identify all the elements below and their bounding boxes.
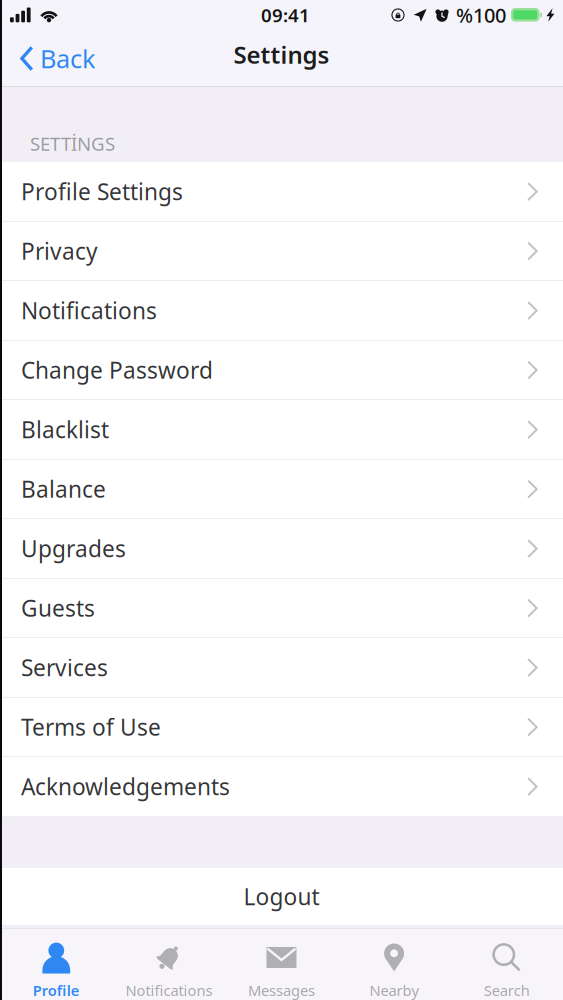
button[interactable]: Upgrades [0,519,563,579]
button[interactable]: Back [0,33,108,83]
staticText: Privacy [21,236,98,266]
staticText: Change Password [21,355,213,385]
button[interactable]: Nearby [338,928,450,1000]
button[interactable]: Messages [225,928,338,1000]
button[interactable]: Privacy [0,222,563,281]
staticText: Messages [248,980,315,1000]
staticText: Terms of Use [21,712,161,742]
staticText: SETTİNGS [30,131,115,156]
staticText: Balance [21,474,106,504]
staticText: Search [484,980,530,1000]
button[interactable]: Services [0,638,563,698]
button[interactable]: Profile Settings [0,162,563,222]
staticText: Notifications [125,980,212,1000]
staticText: Settings [233,39,329,70]
button[interactable]: Change Password [0,341,563,400]
button[interactable]: Guests [0,579,563,638]
staticText: Acknowledgements [21,771,230,801]
button[interactable]: Balance [0,460,563,519]
button[interactable]: Notifications [113,928,225,1000]
button[interactable]: Search [450,928,563,1000]
staticText: Guests [21,593,95,623]
staticText: Logout [243,881,319,911]
staticText: Blacklist [21,414,109,444]
staticText: %100 [456,2,506,28]
staticText: Notifications [21,295,157,325]
button[interactable]: Logout [0,868,563,925]
staticText: Upgrades [21,533,126,563]
staticText: Back [40,42,96,75]
button[interactable]: Blacklist [0,400,563,460]
button[interactable]: Notifications [0,281,563,341]
staticText: 09:41 [261,3,310,27]
button[interactable]: Terms of Use [0,698,563,757]
staticText: Services [21,652,108,682]
staticText: Profile Settings [21,176,183,206]
staticText: Profile [33,980,80,1000]
staticText: Nearby [370,980,419,1000]
button[interactable]: Profile [0,928,113,1000]
button[interactable]: Acknowledgements [0,757,563,817]
